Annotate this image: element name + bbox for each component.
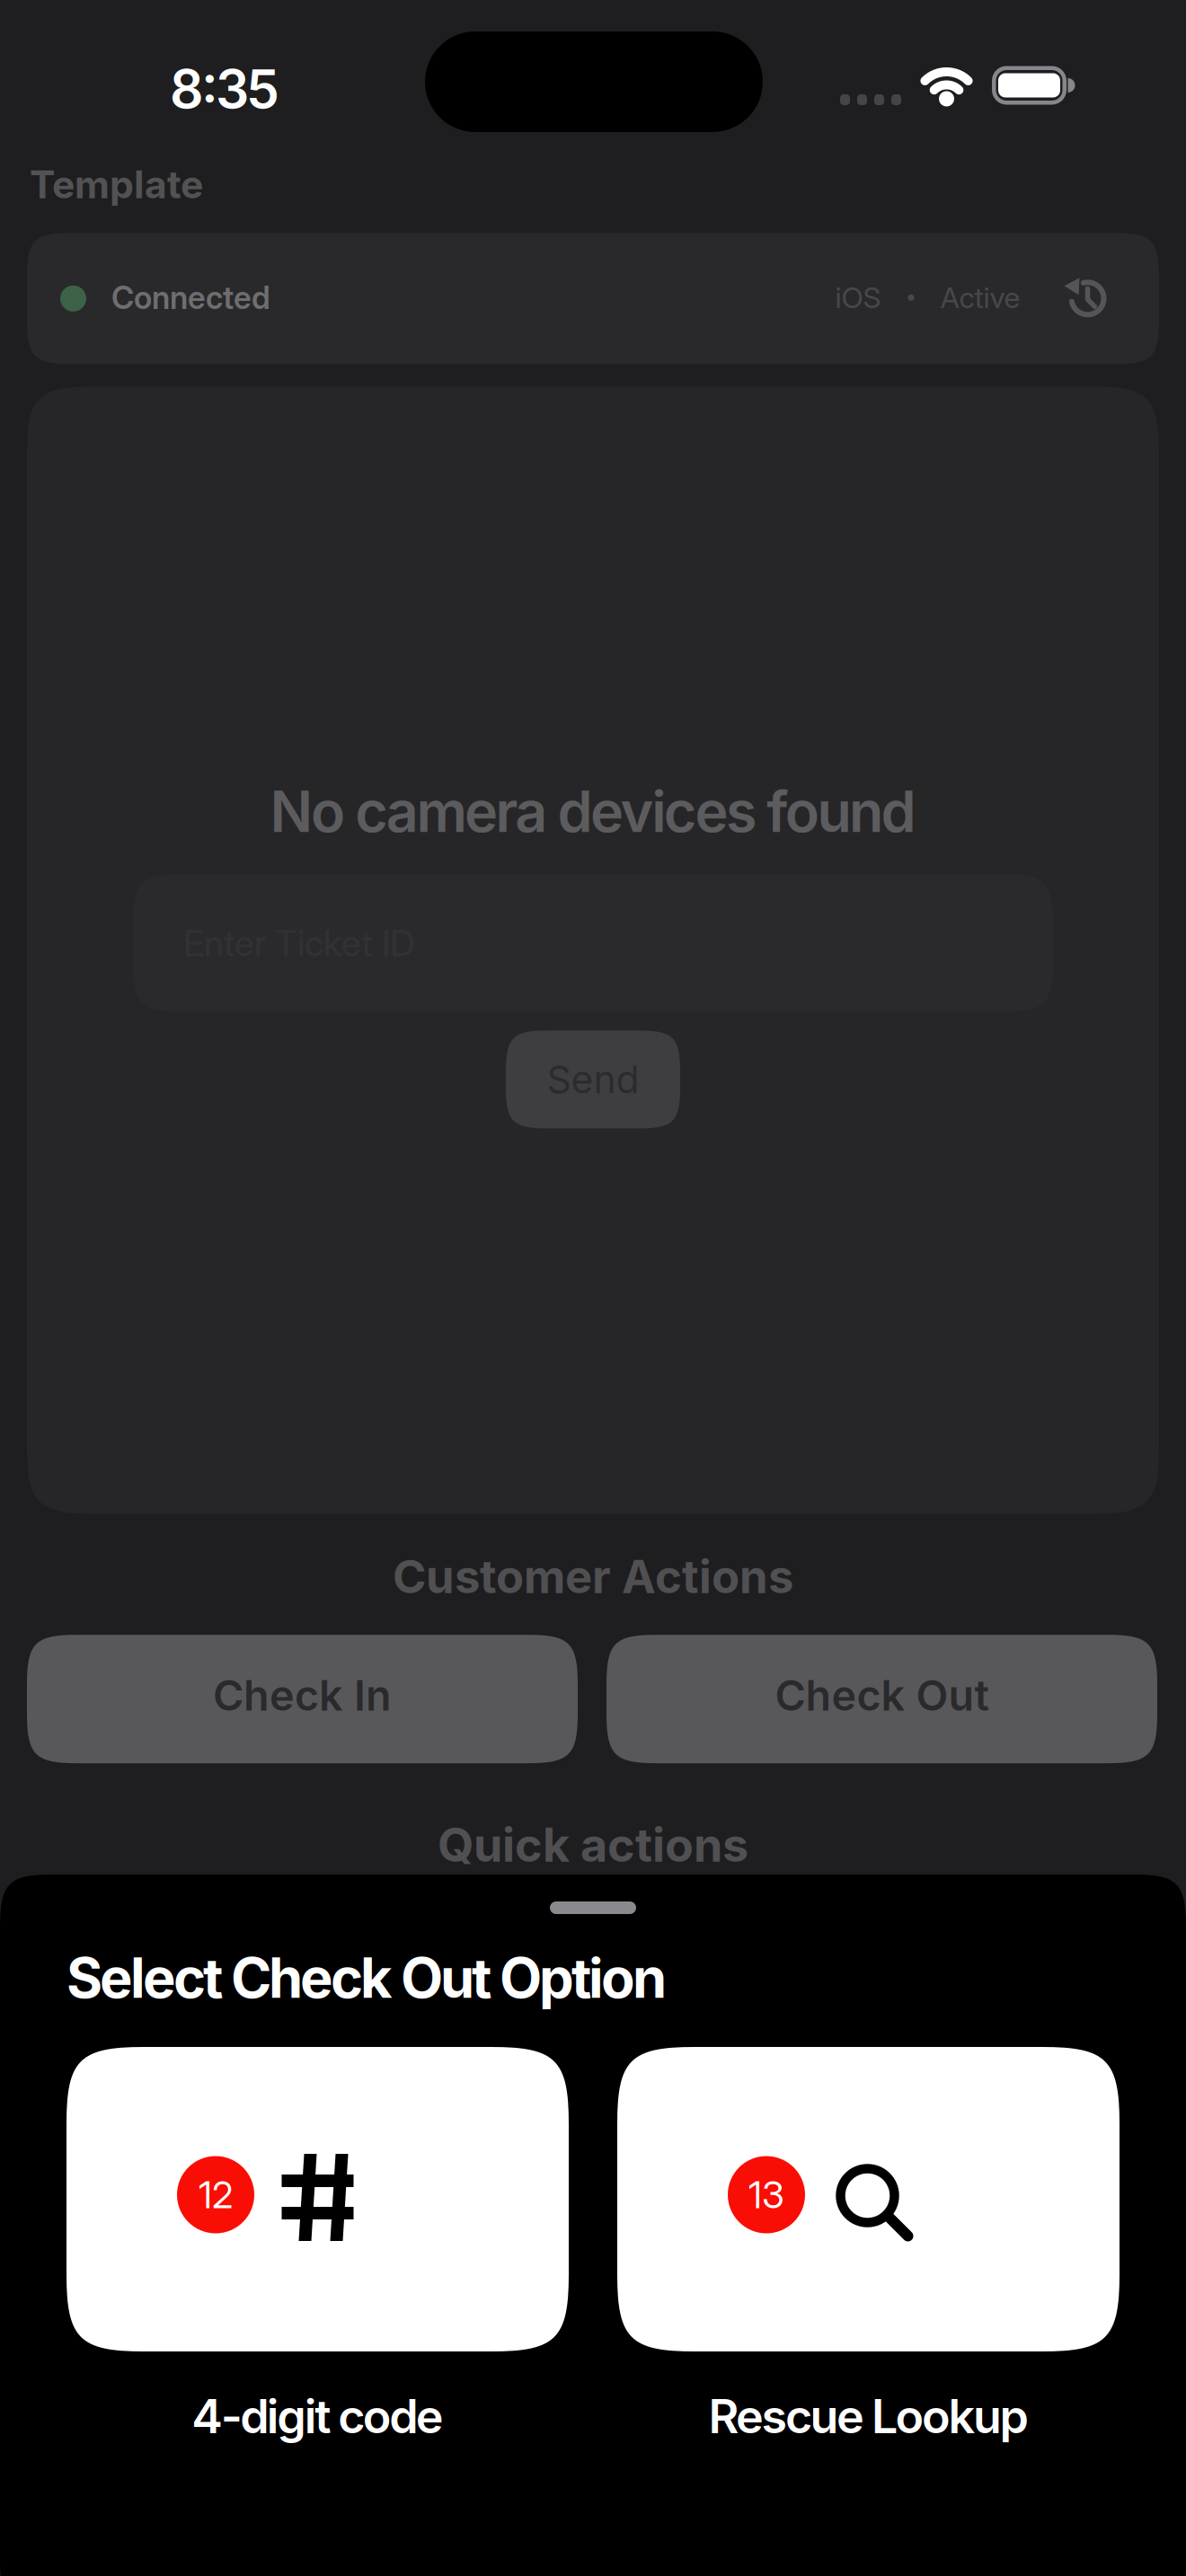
staticText: Customer Actions — [393, 1550, 793, 1603]
staticText: 13 — [748, 2173, 784, 2217]
staticText: Active — [940, 281, 1020, 315]
staticText: Rescue Lookup — [708, 2389, 1028, 2444]
button[interactable]: Check In — [27, 1635, 578, 1763]
staticText: 8:35 — [170, 58, 279, 120]
staticText: Select Check Out Option — [66, 1945, 667, 2010]
staticText: Template — [30, 162, 203, 207]
button[interactable]: 13 — [617, 2047, 1120, 2451]
staticText: Check Out — [775, 1671, 989, 1720]
staticText: iOS — [835, 281, 881, 315]
staticText: No camera devices found — [270, 778, 916, 845]
staticText: 12 — [199, 2173, 233, 2217]
button[interactable]: Check Out — [606, 1635, 1157, 1763]
staticText: 4-digit code — [192, 2389, 444, 2444]
staticText: Connected — [111, 279, 270, 316]
button[interactable]: 12 — [66, 2047, 569, 2451]
staticText: Check In — [213, 1671, 392, 1720]
staticText: Quick actions — [438, 1817, 748, 1872]
button[interactable]: Send — [506, 1030, 680, 1128]
button[interactable]: History — [1063, 277, 1110, 318]
staticText: Send — [547, 1057, 639, 1102]
